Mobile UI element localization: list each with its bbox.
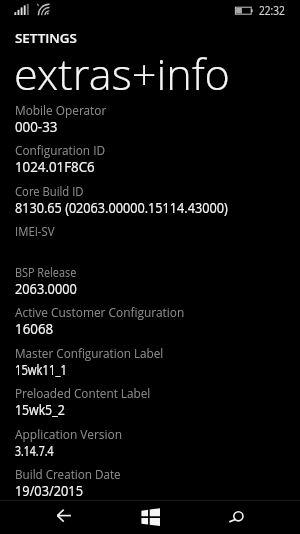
button[interactable]: Start — [108, 501, 194, 534]
staticText: 15wk5_2 — [15, 400, 65, 420]
staticText: 8130.65 (02063.00000.15114.43000) — [15, 198, 228, 218]
button[interactable] — [0, 262, 300, 303]
button[interactable] — [0, 303, 300, 344]
staticText: 1024.01F8C6 — [15, 157, 95, 177]
staticText: 16068 — [15, 319, 54, 339]
button[interactable] — [0, 100, 300, 141]
staticText: Master Configuration Label — [15, 345, 164, 361]
button[interactable] — [0, 465, 300, 506]
staticText: 22:32 — [259, 2, 285, 18]
button[interactable] — [0, 181, 300, 222]
staticText: extras+info — [14, 44, 230, 103]
button[interactable] — [0, 343, 300, 384]
staticText: BSP Release — [15, 264, 77, 280]
staticText: 3.14.7.4 — [15, 441, 54, 461]
button[interactable]: Back — [14, 501, 114, 534]
staticText: Application Version — [15, 426, 122, 442]
staticText: 000-33 — [15, 117, 58, 137]
button[interactable]: Search — [189, 501, 289, 534]
staticText: Core Build ID — [15, 183, 84, 199]
staticText: SETTINGS — [15, 29, 77, 47]
staticText: Configuration ID — [15, 142, 105, 158]
button[interactable] — [0, 141, 300, 182]
staticText: Preloaded Content Label — [15, 385, 150, 401]
staticText: IMEI-SV — [15, 223, 55, 239]
staticText: 2063.0000 — [15, 279, 77, 299]
button[interactable] — [0, 222, 300, 263]
button[interactable] — [0, 424, 300, 465]
staticText: 15wk11_1 — [15, 360, 67, 380]
button[interactable] — [0, 384, 300, 425]
staticText: Build Creation Date — [15, 466, 121, 482]
staticText: Active Customer Configuration — [15, 304, 185, 320]
staticText: Mobile Operator — [15, 102, 107, 118]
staticText: 19/03/2015 — [15, 481, 83, 501]
